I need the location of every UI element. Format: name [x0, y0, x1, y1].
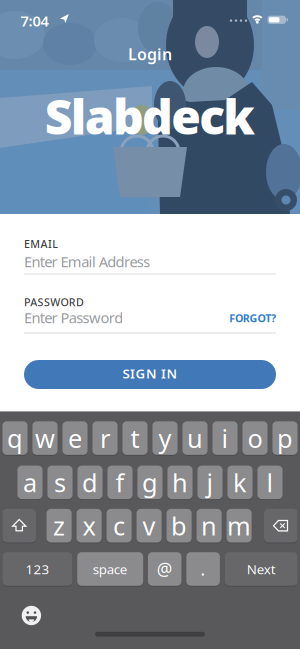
button[interactable]: y	[0, 0, 300, 649]
button[interactable]: Enter Email Address	[24, 252, 276, 270]
button[interactable]: o	[0, 0, 300, 649]
button[interactable]: a	[0, 0, 300, 649]
button[interactable]	[0, 0, 26, 26]
staticText: Enter Password	[24, 308, 123, 327]
button[interactable]: s	[0, 0, 300, 649]
staticText: Login	[128, 43, 172, 65]
button[interactable]: n	[0, 0, 300, 649]
staticText: space	[93, 560, 128, 578]
staticText: k	[233, 466, 247, 499]
button[interactable]: x	[0, 0, 300, 649]
staticText: q	[7, 421, 23, 455]
staticText: a	[23, 466, 37, 499]
staticText: x	[83, 509, 96, 542]
button[interactable]: w	[0, 0, 300, 649]
button[interactable]: r	[0, 0, 300, 649]
staticText: r	[100, 421, 110, 455]
staticText: z	[53, 509, 65, 542]
button[interactable]: z	[0, 0, 300, 649]
staticText: SIGN IN	[122, 364, 177, 382]
button[interactable]: .	[0, 0, 300, 649]
button[interactable]: g	[0, 0, 300, 649]
button[interactable]: i	[0, 0, 300, 649]
button[interactable]: p	[0, 0, 300, 649]
button[interactable]	[0, 0, 300, 649]
staticText: t	[130, 421, 139, 455]
button[interactable]: f	[0, 0, 300, 649]
staticText: j	[206, 466, 213, 499]
button[interactable]: d	[0, 0, 300, 649]
button[interactable]: u	[0, 0, 300, 649]
staticText: f	[115, 466, 124, 499]
button[interactable]: e	[0, 0, 300, 649]
staticText: .	[201, 557, 206, 580]
button[interactable]: j	[0, 0, 300, 649]
staticText: w	[35, 421, 55, 455]
staticText: d	[82, 466, 98, 499]
staticText: o	[247, 421, 262, 455]
staticText: p	[277, 421, 293, 455]
staticText: EMAIL	[24, 237, 58, 251]
staticText: y	[158, 421, 171, 455]
button[interactable]: c	[0, 0, 300, 649]
button[interactable]: FORGOT?	[196, 311, 276, 325]
staticText: @	[157, 557, 173, 580]
button[interactable]: q	[0, 0, 300, 649]
button[interactable]: h	[0, 0, 300, 649]
staticText: FORGOT?	[229, 311, 276, 325]
button[interactable]: b	[0, 0, 300, 649]
button[interactable]: Next	[0, 0, 300, 649]
staticText: n	[201, 509, 217, 542]
button[interactable]: m	[0, 0, 300, 649]
staticText: Next	[247, 560, 276, 578]
staticText: c	[113, 509, 125, 542]
staticText: l	[266, 466, 273, 499]
staticText: m	[227, 509, 251, 542]
staticText: b	[171, 509, 187, 542]
staticText: v	[143, 509, 156, 542]
button[interactable]: v	[0, 0, 300, 649]
staticText: s	[54, 466, 66, 499]
staticText: Slabdeck	[45, 84, 255, 148]
button[interactable]: t	[0, 0, 300, 649]
button[interactable]: k	[0, 0, 300, 649]
button[interactable]: @	[0, 0, 300, 649]
staticText: u	[187, 421, 203, 455]
button[interactable]: 123	[0, 0, 300, 649]
button[interactable]: space	[0, 0, 300, 649]
button[interactable]	[0, 0, 300, 649]
staticText: 123	[25, 560, 49, 578]
button[interactable]: SIGN IN	[24, 360, 276, 389]
staticText: PASSWORD	[24, 295, 84, 309]
button[interactable]: Enter Password	[24, 308, 204, 326]
staticText: Enter Email Address	[24, 252, 150, 271]
staticText: g	[142, 466, 158, 499]
button[interactable]: l	[0, 0, 300, 649]
staticText: e	[68, 421, 82, 455]
staticText: i	[221, 421, 228, 455]
staticText: h	[172, 466, 188, 499]
staticText: 7:04	[20, 11, 48, 30]
